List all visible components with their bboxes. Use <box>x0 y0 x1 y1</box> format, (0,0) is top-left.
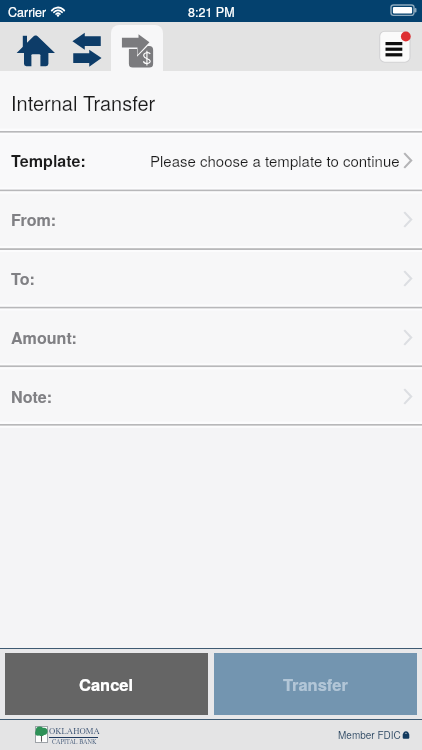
staticText: Internal Transfer <box>11 88 156 117</box>
button[interactable]: Menu <box>374 22 418 71</box>
staticText: Note: <box>11 385 53 408</box>
staticText: Carrier <box>8 3 47 21</box>
button[interactable]: To: <box>0 249 422 308</box>
staticText: From: <box>11 208 57 231</box>
button[interactable]: Transfer <box>214 653 417 715</box>
button[interactable]: Internal Transfer <box>111 22 163 71</box>
button[interactable]: Transfers <box>71 22 111 71</box>
button[interactable]: Template: <box>0 131 422 190</box>
button[interactable]: Amount: <box>0 308 422 367</box>
staticText: Transfer <box>283 672 348 696</box>
button[interactable]: Home <box>1 22 71 71</box>
button[interactable]: From: <box>0 190 422 249</box>
staticText: Template: <box>11 149 86 172</box>
staticText: Cancel <box>79 672 134 696</box>
staticText: Please choose a template to continue <box>150 150 400 171</box>
staticText: Member FDIC <box>338 728 401 742</box>
button[interactable]: Cancel <box>5 653 208 715</box>
staticText: 8:21 PM <box>188 3 235 21</box>
staticText: OKLAHOMA <box>49 725 100 737</box>
staticText: To: <box>11 267 35 290</box>
button[interactable]: Note: <box>0 367 422 426</box>
staticText: CAPITAL BANK <box>52 737 97 745</box>
staticText: Amount: <box>11 326 77 349</box>
